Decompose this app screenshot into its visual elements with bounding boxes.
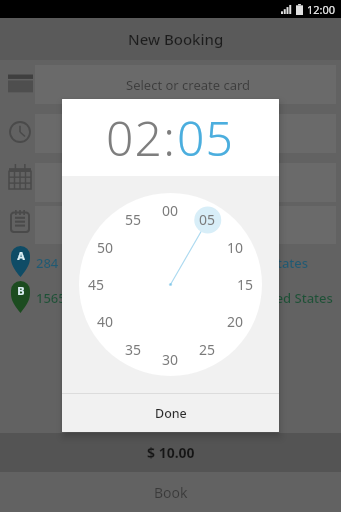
staticText: 1565 Bryant Street, San Francisco, Unite… bbox=[36, 289, 333, 307]
staticText: A bbox=[17, 248, 25, 263]
button[interactable] bbox=[35, 206, 336, 244]
staticText: 35 bbox=[125, 340, 142, 359]
staticText: 45 bbox=[88, 275, 105, 294]
staticText: 05 bbox=[199, 210, 216, 229]
staticText: 05 bbox=[177, 105, 235, 170]
other: Payment card bbox=[8, 72, 33, 93]
staticText: 15 bbox=[237, 275, 254, 294]
staticText: 55 bbox=[125, 210, 142, 229]
staticText: Done bbox=[155, 405, 187, 422]
staticText: 40 bbox=[97, 312, 114, 331]
staticText: 30 bbox=[162, 350, 179, 369]
staticText: Select or create card bbox=[126, 76, 251, 94]
staticText: 02: bbox=[106, 105, 177, 170]
staticText: 284 Ellis Street, San Francisco, United … bbox=[36, 254, 309, 272]
other: Time bbox=[9, 121, 31, 143]
staticText: New Booking bbox=[128, 29, 224, 49]
staticText: 25 bbox=[199, 340, 216, 359]
button[interactable]: Done bbox=[62, 394, 279, 432]
other: Notes bbox=[11, 210, 29, 232]
staticText: 50 bbox=[97, 238, 114, 257]
staticText: 20 bbox=[227, 312, 244, 331]
button[interactable] bbox=[35, 114, 336, 153]
button[interactable]: 00 bbox=[62, 176, 279, 393]
staticText: B bbox=[17, 283, 25, 298]
staticText: Book bbox=[154, 483, 188, 502]
staticText: 12:00 bbox=[307, 2, 336, 17]
other: Date bbox=[9, 164, 31, 189]
staticText: 00 bbox=[162, 201, 179, 220]
staticText: 10 bbox=[227, 238, 244, 257]
button[interactable] bbox=[35, 65, 336, 104]
button[interactable] bbox=[35, 163, 336, 202]
staticText: $ 10.00 bbox=[147, 443, 195, 462]
